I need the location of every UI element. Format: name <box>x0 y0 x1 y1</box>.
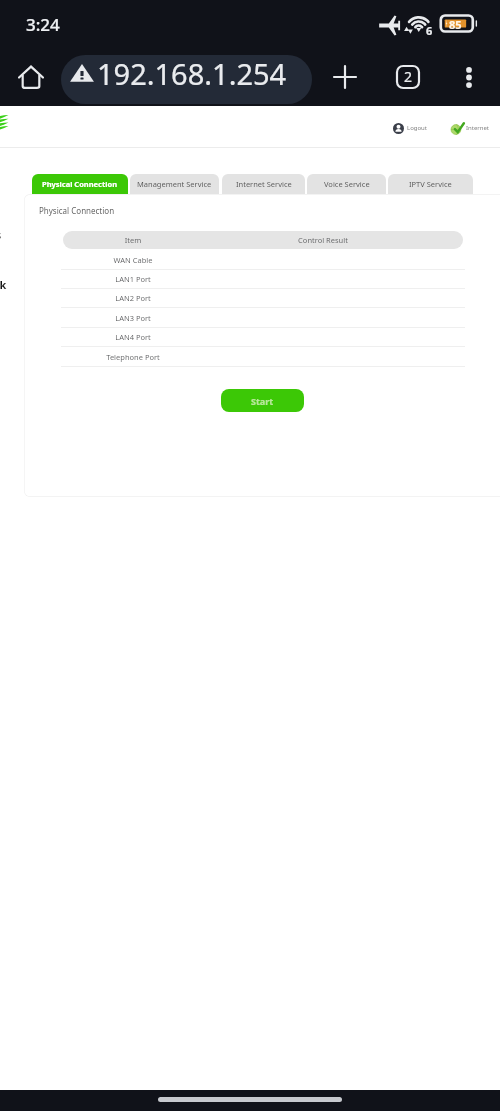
staticText: LAN3 Port <box>83 313 183 323</box>
staticText: Management Service <box>137 179 212 189</box>
staticText: Control Result <box>263 235 383 245</box>
button[interactable]: Internet Service <box>222 174 305 194</box>
staticText: LAN1 Port <box>83 274 183 284</box>
button[interactable]: Management Service <box>130 174 219 194</box>
button[interactable]: More options <box>450 58 488 96</box>
staticText: Status <box>0 227 2 242</box>
staticText: Internet <box>466 124 490 132</box>
staticText: Internet Service <box>236 179 292 189</box>
staticText: 3:24 <box>26 13 60 36</box>
button[interactable]: Physical Connection <box>32 174 128 194</box>
button[interactable]: 192.168.1.254 <box>61 55 312 104</box>
staticText: Physical Connection <box>42 179 118 189</box>
button[interactable]: Voice Service <box>307 174 386 194</box>
staticText: 6 <box>426 23 433 38</box>
staticText: Network <box>0 277 7 292</box>
staticText: Telephone Port <box>83 352 183 362</box>
button[interactable]: Switch tabs <box>389 58 427 96</box>
button[interactable]: IPTV Service <box>388 174 473 194</box>
staticText: LAN4 Port <box>83 332 183 342</box>
button[interactable]: New tab <box>326 58 364 96</box>
button[interactable]: Logout <box>393 121 427 135</box>
staticText: WAN Cable <box>83 255 183 265</box>
button[interactable]: Home <box>12 58 50 96</box>
staticText: 192.168.1.254 <box>97 55 287 93</box>
staticText: 2 <box>404 67 413 86</box>
staticText: IPTV Service <box>409 179 452 189</box>
button[interactable]: Internet <box>451 121 490 135</box>
button[interactable]: Start <box>221 389 304 412</box>
staticText: Start <box>251 395 274 407</box>
staticText: 85 <box>449 17 462 32</box>
staticText: Physical Connection <box>39 205 115 216</box>
staticText: LAN2 Port <box>83 293 183 303</box>
staticText: Item <box>115 235 151 245</box>
staticText: Logout <box>407 124 427 132</box>
staticText: Voice Service <box>324 179 370 189</box>
